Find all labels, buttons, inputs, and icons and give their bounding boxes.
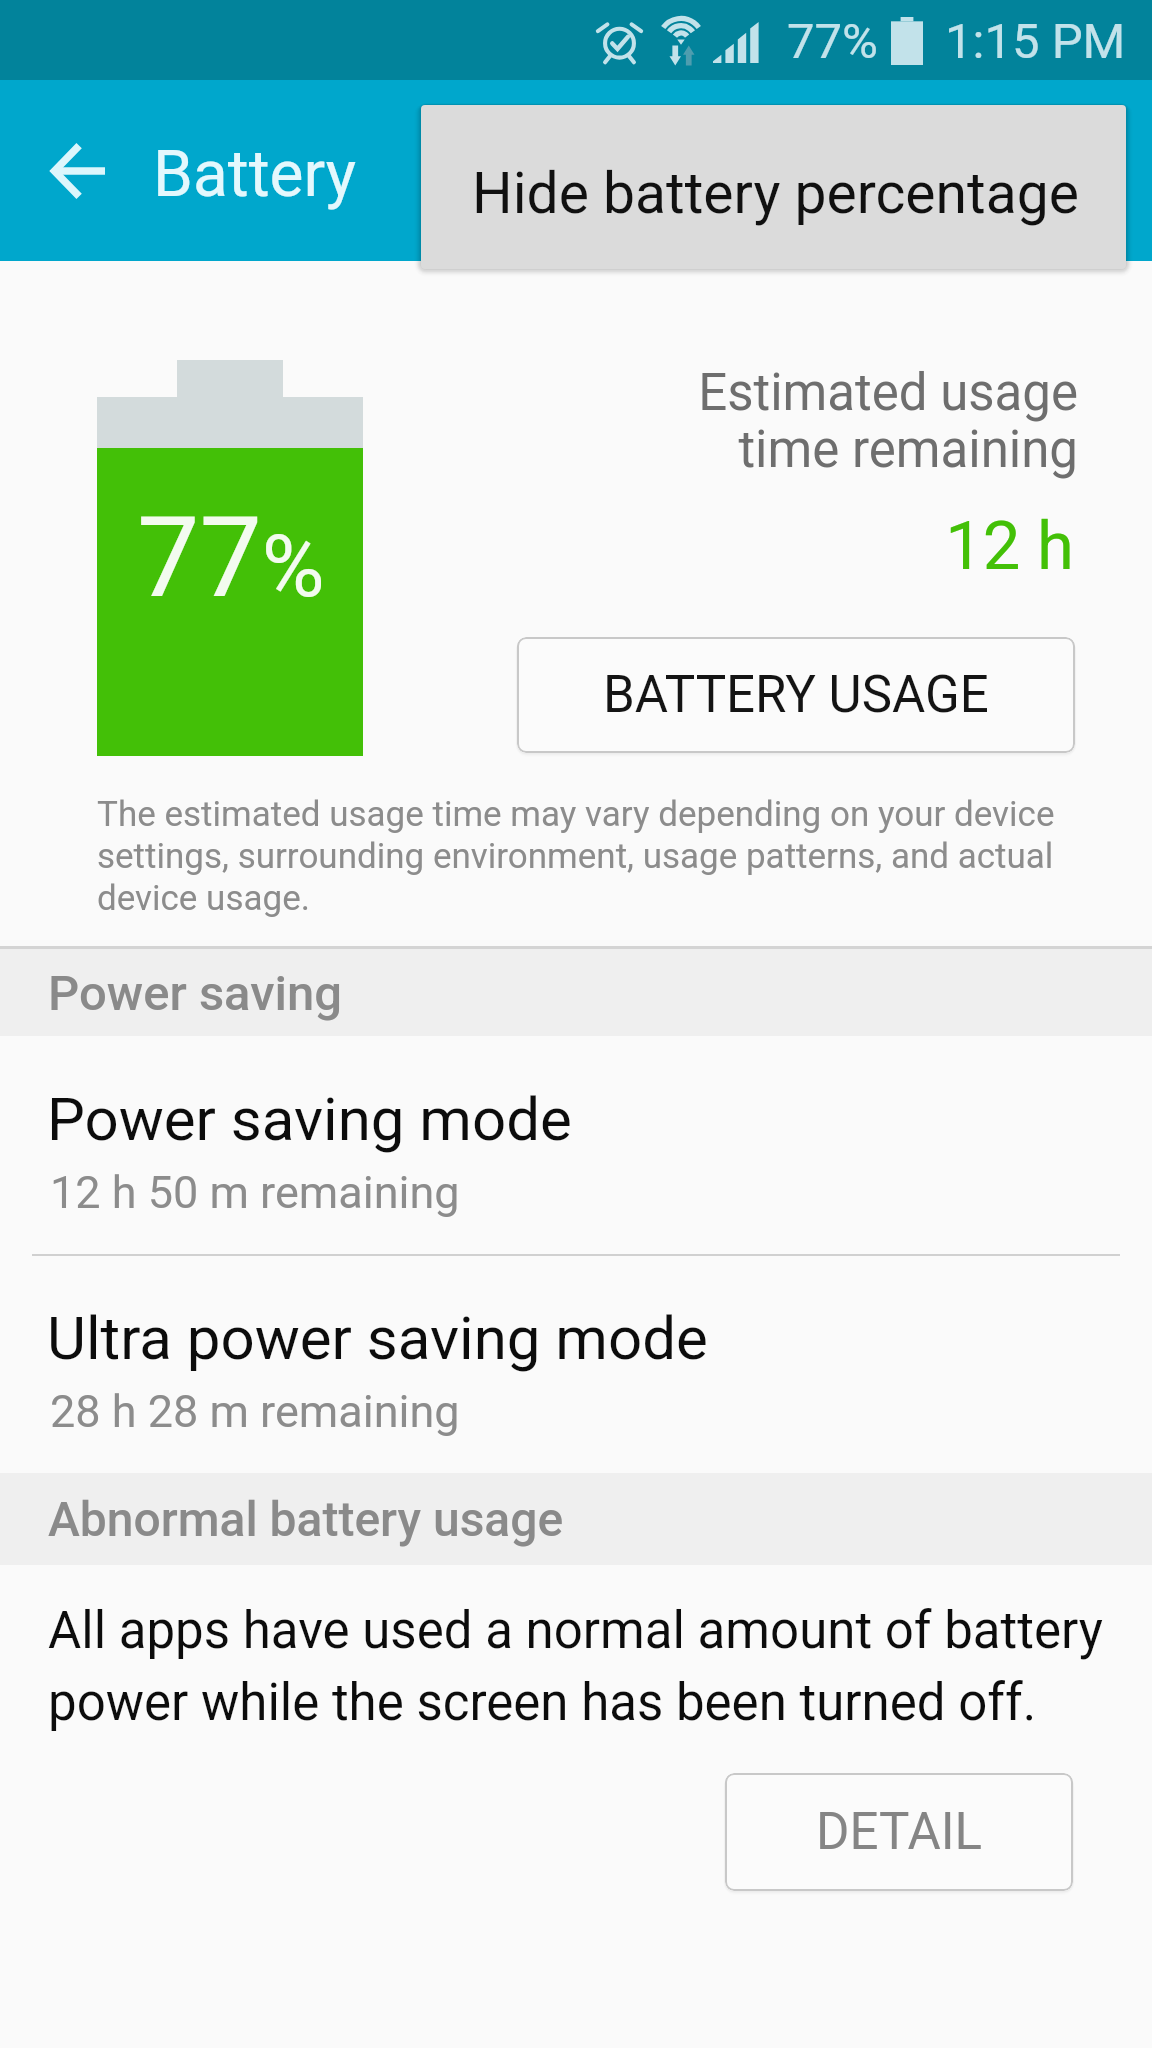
button[interactable]: Navigate up — [8, 80, 148, 261]
staticText: Power saving — [48, 965, 342, 1022]
staticText: DETAIL — [816, 1802, 983, 1862]
button[interactable]: DETAIL — [725, 1773, 1073, 1891]
staticText: 1:15 PM — [945, 13, 1126, 70]
staticText: 12 h 50 m remaining — [50, 1166, 460, 1219]
button[interactable]: Power saving mode — [0, 1036, 1152, 1255]
button[interactable]: BATTERY USAGE — [517, 637, 1075, 753]
staticText: 12 h — [674, 507, 1074, 586]
staticText: Hide battery percentage — [472, 160, 1079, 227]
button[interactable]: Hide battery percentage — [421, 105, 1126, 269]
staticText: BATTERY USAGE — [603, 665, 989, 725]
staticText: 77% — [137, 493, 325, 623]
staticText: The estimated usage time may vary depend… — [97, 794, 1087, 919]
staticText: 77% — [787, 13, 878, 70]
staticText: Battery — [153, 137, 357, 212]
button[interactable]: Ultra power saving mode — [0, 1256, 1152, 1473]
staticText: Power saving mode — [47, 1084, 572, 1154]
staticText: Ultra power saving mode — [47, 1303, 708, 1373]
staticText: All apps have used a normal amount of ba… — [48, 1601, 1138, 1732]
staticText: 28 h 28 m remaining — [50, 1385, 460, 1438]
staticText: Estimated usage time remaining — [378, 363, 1078, 480]
staticText: Abnormal battery usage — [48, 1491, 564, 1547]
